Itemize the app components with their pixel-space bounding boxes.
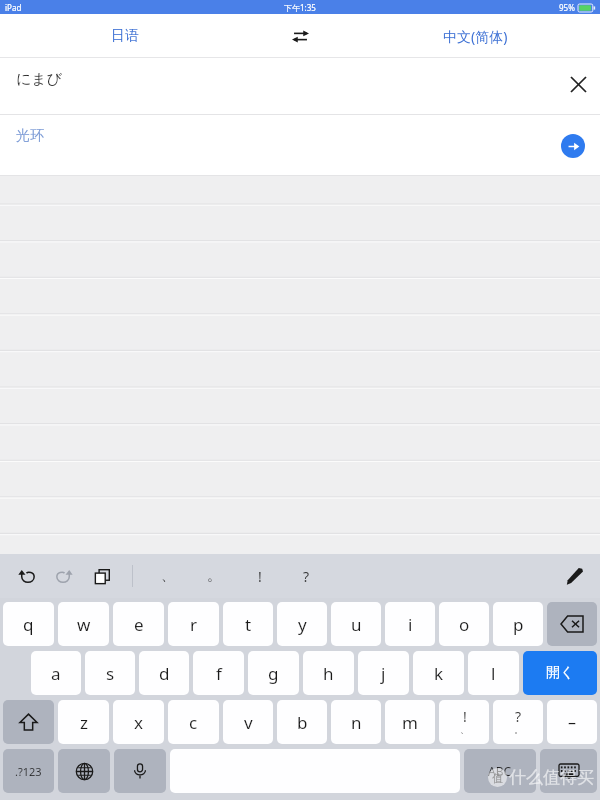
button[interactable]: Voice input (114, 749, 166, 793)
button[interactable]: 光环 (0, 115, 600, 176)
staticText: v (244, 711, 253, 734)
staticText: s (106, 662, 115, 685)
staticText: 值 (492, 771, 503, 785)
button[interactable]: Paste (86, 560, 118, 592)
button[interactable]: b (277, 700, 327, 744)
button[interactable]: Swap languages (277, 16, 323, 56)
button[interactable]: g (248, 651, 299, 695)
button[interactable]: y (277, 602, 327, 646)
button[interactable]: Change keyboard language (58, 749, 110, 793)
button[interactable]: ABC (464, 749, 536, 793)
staticText: f (216, 662, 222, 685)
button[interactable]: Hide keyboard (540, 749, 597, 793)
button[interactable]: Backspace (547, 602, 597, 646)
button[interactable]: – (547, 700, 597, 744)
button[interactable]: m (385, 700, 435, 744)
button[interactable]: d (139, 651, 189, 695)
button[interactable]: 開く (523, 651, 597, 695)
staticText: o (459, 613, 470, 636)
button[interactable]: u (331, 602, 381, 646)
staticText: 開く (546, 664, 575, 682)
button[interactable]: h (303, 651, 354, 695)
staticText: ? (515, 707, 522, 726)
button[interactable]: r (168, 602, 219, 646)
staticText: i (408, 613, 413, 636)
staticText: 、 (161, 567, 175, 585)
staticText: q (23, 613, 34, 636)
staticText: a (51, 662, 61, 685)
staticText: 光环 (16, 127, 44, 145)
staticText: 什么值得买 (509, 767, 594, 788)
staticText: 日语 (111, 27, 139, 45)
staticText: z (80, 711, 88, 734)
staticText: u (351, 613, 362, 636)
button[interactable]: Clear text (556, 62, 600, 106)
staticText: 中文(简体) (443, 27, 508, 46)
staticText: x (134, 711, 143, 734)
button[interactable]: k (413, 651, 464, 695)
staticText: 、 (460, 724, 469, 735)
staticText: w (77, 613, 91, 636)
staticText: .?123 (15, 764, 42, 779)
staticText: ABC (488, 763, 512, 779)
button[interactable]: Undo (10, 560, 42, 592)
button[interactable]: s (85, 651, 135, 695)
staticText: ! (258, 567, 262, 586)
staticText: b (297, 711, 308, 734)
staticText: n (351, 711, 362, 734)
button[interactable]: n (331, 700, 381, 744)
staticText: 。 (207, 567, 221, 585)
staticText: k (434, 662, 444, 685)
button[interactable]: Shift (3, 700, 54, 744)
staticText: d (159, 662, 170, 685)
staticText: h (323, 662, 334, 685)
button[interactable]: z (58, 700, 109, 744)
button[interactable]: i (385, 602, 435, 646)
staticText: j (381, 662, 386, 685)
staticText: 。 (514, 724, 523, 735)
staticText: l (491, 662, 496, 685)
staticText: ! (463, 707, 467, 726)
staticText: にまび (16, 70, 63, 89)
button[interactable]: e (113, 602, 164, 646)
staticText: g (268, 662, 279, 685)
staticText: y (298, 613, 307, 636)
staticText: m (402, 711, 418, 734)
button[interactable]: Redo (48, 560, 80, 592)
staticText: r (190, 613, 198, 636)
button[interactable]: a (31, 651, 81, 695)
button[interactable]: p (493, 602, 543, 646)
button[interactable]: .?123 (3, 749, 54, 793)
button[interactable]: ? (283, 559, 329, 593)
button[interactable]: ! (237, 559, 283, 593)
button[interactable]: 日语 (0, 14, 250, 58)
staticText: c (189, 711, 198, 734)
button[interactable]: q (3, 602, 54, 646)
button[interactable]: 中文(简体) (350, 14, 600, 58)
staticText: ? (303, 567, 310, 586)
staticText: 下午1:35 (284, 2, 316, 13)
staticText: t (245, 613, 252, 636)
button[interactable]: x (113, 700, 164, 744)
button[interactable]: j (358, 651, 409, 695)
button[interactable]: 。 (191, 559, 237, 593)
button[interactable]: o (439, 602, 489, 646)
button[interactable]: c (168, 700, 219, 744)
button[interactable]: ? (493, 700, 543, 744)
button[interactable]: Show translation detail (561, 134, 585, 158)
button[interactable]: 、 (145, 559, 191, 593)
staticText: iPad (5, 2, 22, 13)
staticText: – (568, 711, 577, 733)
button[interactable]: w (58, 602, 109, 646)
button[interactable]: v (223, 700, 273, 744)
staticText: 95% (559, 2, 575, 13)
staticText: e (134, 613, 144, 636)
button[interactable]: t (223, 602, 273, 646)
button[interactable]: f (193, 651, 244, 695)
staticText: p (513, 613, 524, 636)
button[interactable]: Handwriting (556, 558, 592, 594)
button[interactable]: ! (439, 700, 489, 744)
button[interactable]: l (468, 651, 519, 695)
